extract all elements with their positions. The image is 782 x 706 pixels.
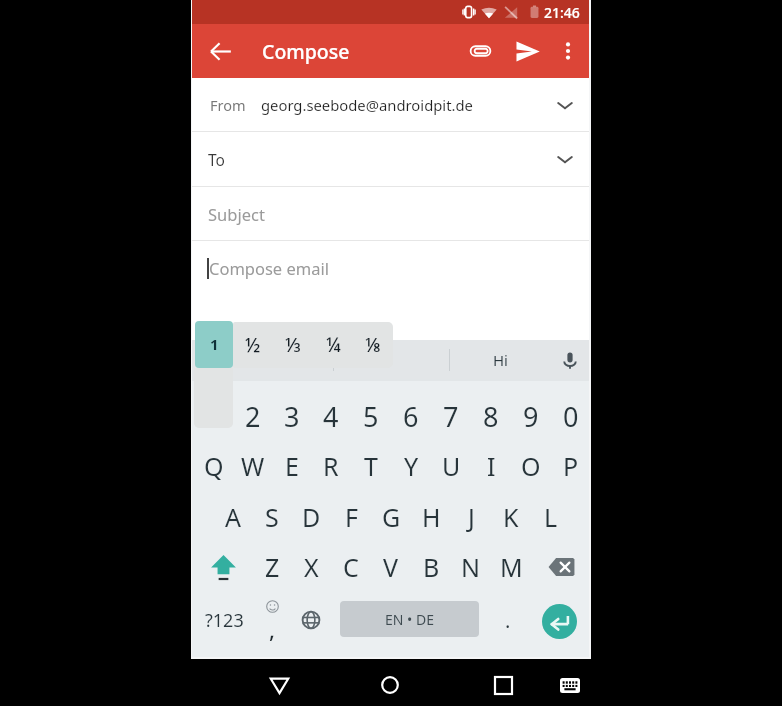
button[interactable]: J: [451, 492, 491, 542]
button[interactable]: To: [192, 132, 589, 186]
button[interactable]: Hi: [465, 340, 535, 379]
button[interactable]: Backspace: [531, 542, 591, 592]
button[interactable]: 2: [233, 391, 272, 441]
staticText: B: [423, 550, 440, 584]
button[interactable]: M: [491, 542, 531, 592]
button[interactable]: L: [531, 492, 571, 542]
staticText: D: [302, 500, 321, 534]
button[interactable]: Shift: [194, 542, 253, 592]
button[interactable]: 7: [431, 391, 471, 441]
staticText: 9: [523, 398, 539, 435]
staticText: J: [468, 500, 475, 534]
button[interactable]: P: [551, 441, 591, 491]
staticText: Q: [204, 449, 224, 483]
button[interactable]: ,: [248, 592, 296, 648]
staticText: G: [382, 500, 401, 534]
button[interactable]: K: [491, 492, 531, 542]
button[interactable]: Attach file: [458, 24, 503, 78]
button[interactable]: Home: [372, 662, 408, 706]
button[interactable]: 5: [351, 391, 391, 441]
staticText: 7: [443, 398, 459, 435]
button[interactable]: E: [272, 441, 311, 491]
button[interactable]: Navigate up: [197, 24, 243, 78]
staticText: 2: [245, 398, 261, 435]
button[interactable]: 4: [311, 391, 351, 441]
button[interactable]: D: [291, 492, 331, 542]
staticText: F: [345, 500, 358, 534]
button[interactable]: A: [213, 492, 252, 542]
button[interactable]: 1: [194, 391, 233, 441]
button[interactable]: B: [411, 542, 451, 592]
button[interactable]: V: [371, 542, 411, 592]
button[interactable]: ½: [233, 322, 273, 368]
staticText: ,: [269, 614, 276, 644]
button[interactable]: ¼: [313, 322, 353, 368]
button[interactable]: W: [233, 441, 272, 491]
button[interactable]: Compose email: [192, 241, 589, 295]
button[interactable]: ?123: [196, 592, 252, 648]
button[interactable]: 1: [195, 321, 233, 368]
button[interactable]: Enter: [542, 604, 577, 639]
button[interactable]: 9: [511, 391, 551, 441]
staticText: L: [544, 500, 558, 534]
button[interactable]: F: [331, 492, 371, 542]
staticText: 1: [210, 334, 219, 354]
button[interactable]: ⅛: [353, 322, 393, 368]
button[interactable]: 0: [551, 391, 591, 441]
button[interactable]: Back: [261, 662, 297, 706]
button[interactable]: More options: [548, 24, 588, 78]
button[interactable]: U: [431, 441, 471, 491]
button[interactable]: 8: [471, 391, 511, 441]
staticText: From: [210, 95, 246, 115]
button[interactable]: Q: [194, 441, 233, 491]
staticText: georg.seebode@androidpit.de: [261, 95, 473, 115]
staticText: Compose email: [209, 257, 329, 279]
button[interactable]: T: [351, 441, 391, 491]
staticText: ½: [245, 332, 261, 358]
staticText: Y: [404, 449, 419, 483]
button[interactable]: C: [331, 542, 371, 592]
button[interactable]: R: [311, 441, 351, 491]
staticText: ?123: [205, 608, 244, 633]
button[interactable]: ⅓: [273, 322, 313, 368]
button[interactable]: Keyboard: [552, 662, 588, 706]
button[interactable]: 3: [272, 391, 311, 441]
staticText: ⅛: [365, 332, 382, 358]
staticText: ¼: [326, 332, 341, 358]
button[interactable]: Thé: [192, 340, 333, 379]
staticText: K: [503, 500, 519, 534]
button[interactable]: EN • DE: [340, 601, 479, 637]
button[interactable]: Y: [391, 441, 431, 491]
staticText: 0: [563, 398, 579, 435]
button[interactable]: O: [511, 441, 551, 491]
staticText: N: [461, 550, 481, 584]
button[interactable]: I: [471, 441, 511, 491]
button[interactable]: Subject: [192, 187, 589, 240]
staticText: 5: [363, 398, 379, 435]
button[interactable]: H: [411, 492, 451, 542]
button[interactable]: N: [451, 542, 491, 592]
staticText: I: [487, 449, 496, 483]
button[interactable]: G: [371, 492, 411, 542]
staticText: H: [422, 500, 441, 534]
button[interactable]: S: [252, 492, 291, 542]
button[interactable]: Voice input: [553, 340, 587, 379]
staticText: Compose: [262, 38, 350, 65]
staticText: M: [500, 550, 523, 584]
button[interactable]: Send: [505, 24, 550, 78]
staticText: .: [505, 607, 511, 634]
staticText: S: [265, 500, 279, 534]
button[interactable]: 6: [391, 391, 431, 441]
staticText: 1: [206, 398, 222, 435]
button[interactable]: Z: [253, 542, 292, 592]
button[interactable]: Recent apps: [485, 662, 521, 706]
button[interactable]: Change language: [292, 592, 330, 648]
staticText: Z: [265, 550, 280, 584]
staticText: Subject: [208, 203, 265, 225]
staticText: Hi: [493, 350, 508, 370]
button[interactable]: .: [490, 592, 526, 648]
staticText: 6: [403, 398, 419, 435]
button[interactable]: X: [292, 542, 331, 592]
button[interactable]: From: [192, 78, 589, 131]
staticText: O: [521, 449, 541, 483]
